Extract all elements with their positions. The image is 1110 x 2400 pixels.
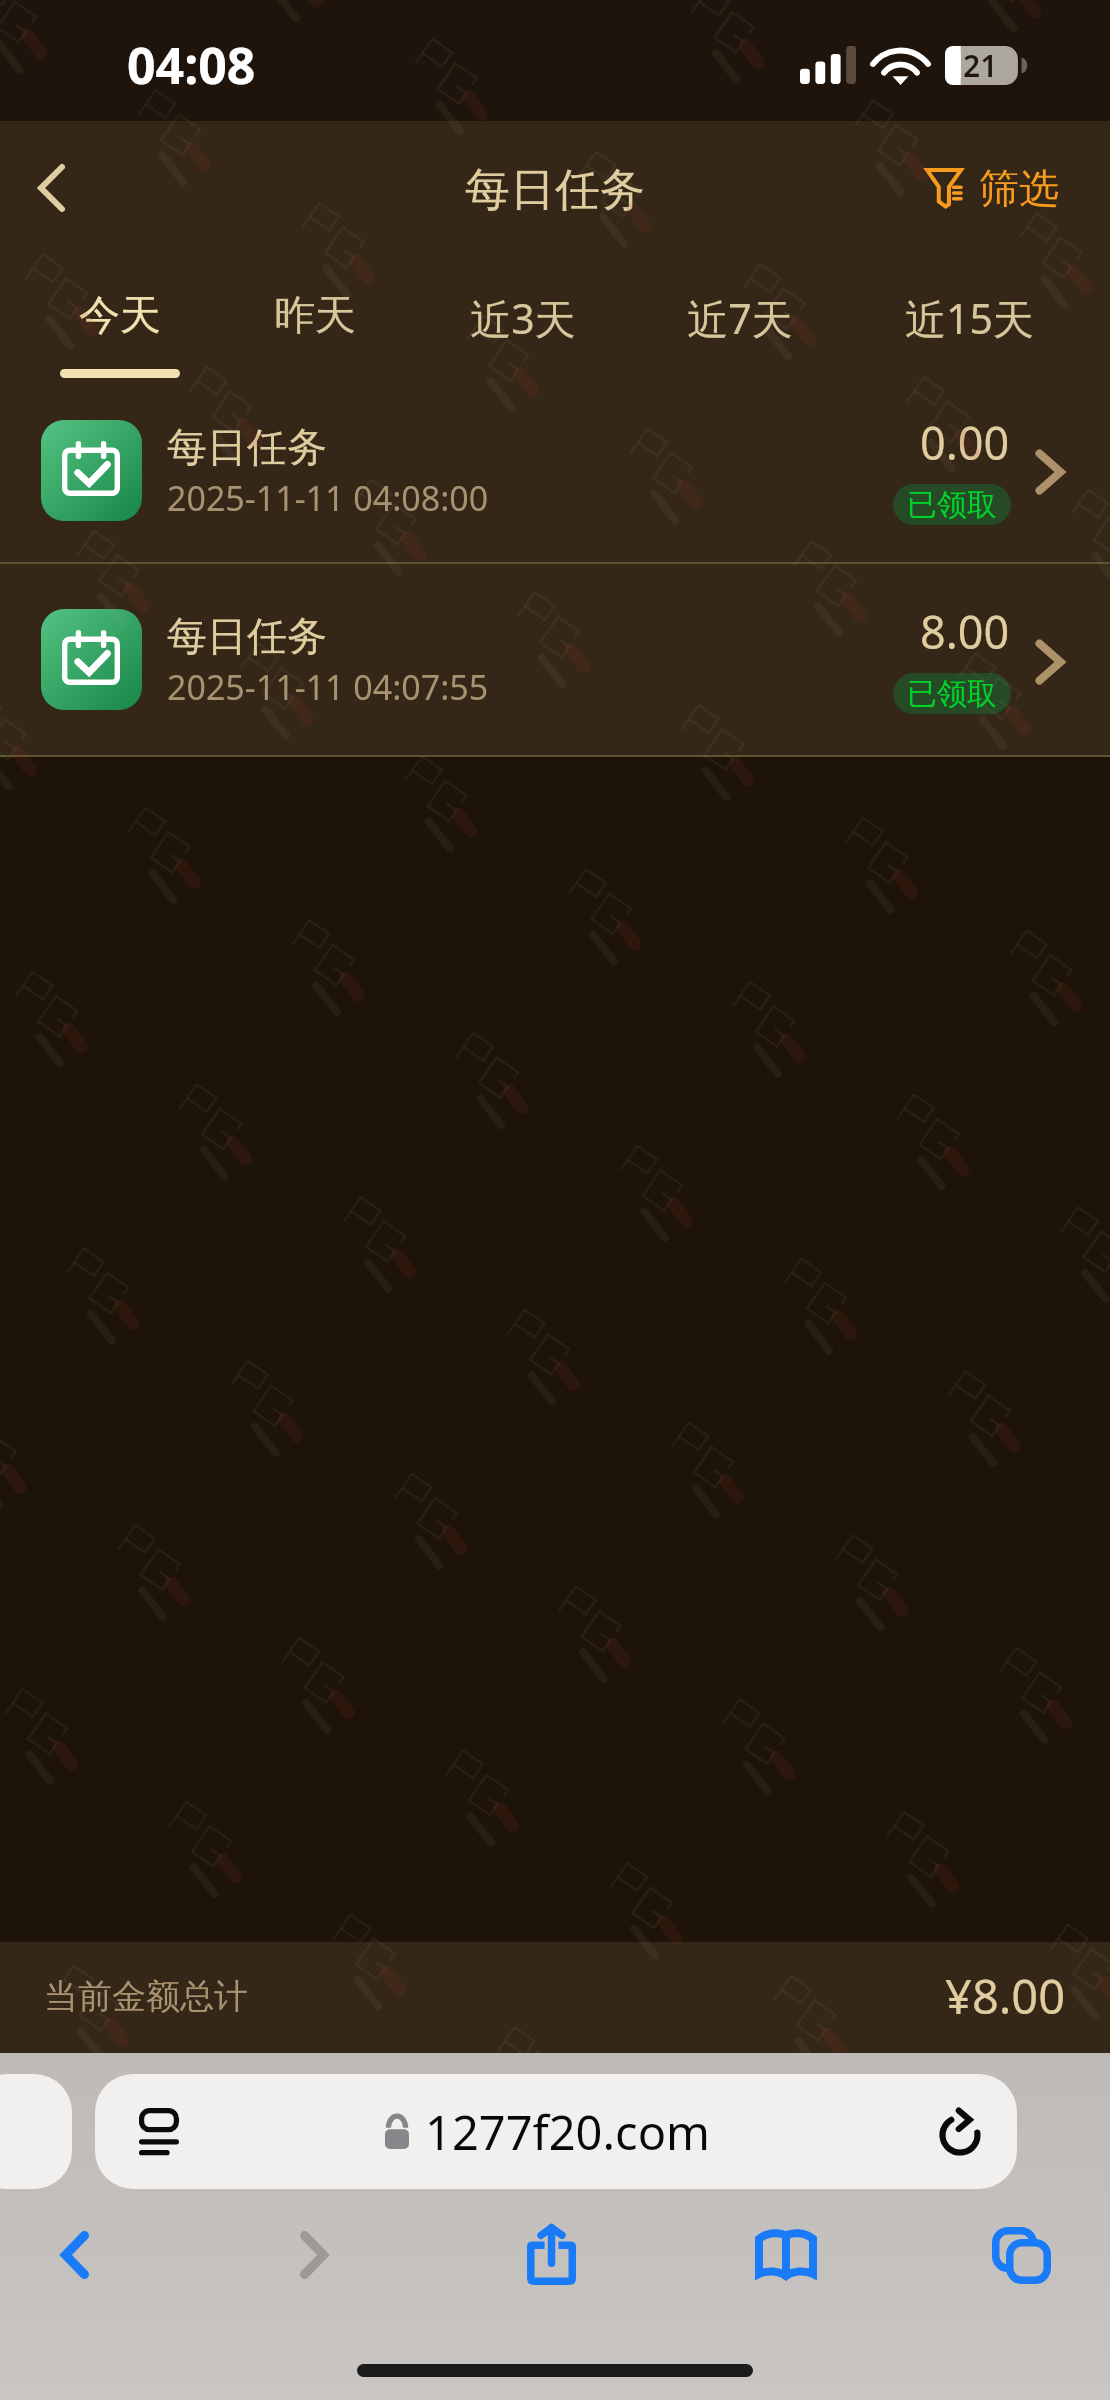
button[interactable]: Tabs [971, 2205, 1071, 2305]
staticText: 近3天 [470, 290, 576, 346]
staticText: 今天 [79, 290, 161, 342]
button[interactable]: 每日任务 [0, 378, 1110, 562]
staticText: 已领取 [907, 486, 997, 524]
button[interactable]: Details [1020, 632, 1080, 692]
button[interactable]: Share [501, 2204, 601, 2304]
staticText: 1277f20.com [425, 2100, 711, 2164]
button[interactable]: 筛选 [907, 141, 1077, 235]
button[interactable]: Bookmarks [736, 2204, 836, 2304]
staticText: 8.00 [920, 601, 1010, 662]
staticText: 04:08 [127, 31, 256, 99]
staticText: 近7天 [687, 290, 793, 346]
staticText: 已领取 [907, 675, 997, 713]
staticText: 2025-11-11 04:08:00 [167, 475, 489, 521]
staticText: 近15天 [905, 290, 1034, 346]
staticText: 每日任务 [167, 422, 327, 472]
button[interactable]: 今天 [35, 279, 205, 378]
staticText: ¥8.00 [945, 1964, 1066, 2028]
button[interactable]: Back [25, 2205, 125, 2305]
button[interactable]: 近7天 [655, 279, 825, 378]
button[interactable]: Details [1020, 442, 1080, 502]
button[interactable]: 每日任务 [0, 564, 1110, 755]
button[interactable]: 昨天 [230, 279, 400, 378]
button[interactable]: 近15天 [884, 279, 1054, 378]
staticText: 每日任务 [167, 611, 327, 661]
staticText: 2025-11-11 04:07:55 [167, 664, 489, 710]
button[interactable]: Page settings [129, 2102, 189, 2162]
staticText: 每日任务 [465, 162, 645, 219]
button[interactable]: Forward [264, 2205, 364, 2305]
button[interactable]: Back [9, 146, 93, 230]
button[interactable]: Reload [931, 2102, 991, 2162]
button[interactable]: Page settings [95, 2074, 1017, 2189]
staticText: 0.00 [920, 412, 1010, 473]
button[interactable]: 近3天 [438, 279, 608, 378]
staticText: 当前金额总计 [44, 1975, 248, 2018]
staticText: 筛选 [979, 163, 1059, 213]
staticText: 昨天 [274, 290, 356, 342]
staticText: 21 [963, 45, 998, 84]
